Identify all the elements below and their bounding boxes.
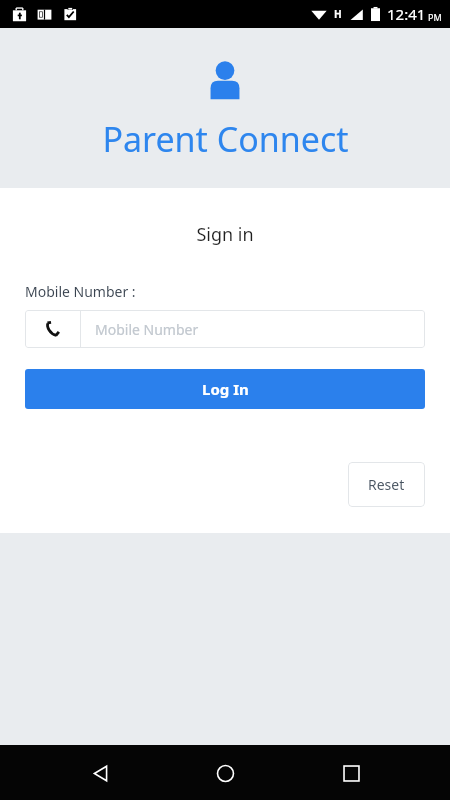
staticText: H	[334, 7, 342, 21]
staticText: Sign in	[25, 222, 425, 247]
staticText: Mobile Number :	[25, 282, 136, 301]
button[interactable]: Mobile Number	[25, 310, 425, 348]
button[interactable]: Home	[199, 747, 251, 799]
staticText: Log In	[202, 379, 249, 399]
staticText: Parent Connect	[102, 116, 349, 162]
button[interactable]: Reset	[348, 462, 425, 507]
staticText: PM	[428, 11, 442, 23]
button[interactable]: Back	[74, 747, 126, 799]
button[interactable]: Log In	[25, 369, 425, 409]
staticText: Mobile Number	[95, 320, 199, 339]
button[interactable]: Recent apps	[325, 747, 377, 799]
staticText: Reset	[368, 475, 405, 494]
staticText: 12:41	[387, 4, 426, 24]
